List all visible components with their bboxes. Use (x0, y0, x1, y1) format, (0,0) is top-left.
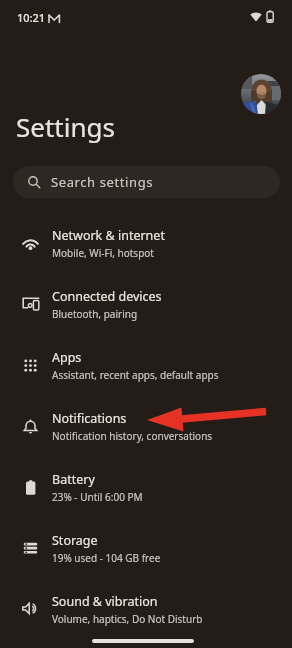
staticText: 23% - Until 6:00 PM (52, 490, 143, 504)
button[interactable]: Sound & vibration (0, 579, 292, 640)
button[interactable]: Storage (0, 518, 292, 579)
staticText: Search settings (51, 173, 154, 191)
staticText: 19% used - 104 GB free (52, 551, 161, 565)
staticText: Notifications (52, 410, 127, 427)
staticText: Connected devices (52, 288, 162, 305)
staticText: Apps (52, 349, 82, 366)
staticText: Assistant, recent apps, default apps (52, 368, 219, 382)
button[interactable]: Connected devices (0, 274, 292, 335)
staticText: Notification history, conversations (52, 429, 213, 443)
staticText: Battery (52, 471, 95, 488)
button[interactable]: Notifications (0, 396, 292, 457)
staticText: Settings (16, 109, 115, 144)
staticText: Volume, haptics, Do Not Disturb (52, 612, 203, 626)
button[interactable]: Network & internet (0, 213, 292, 274)
button[interactable]: Search settings (13, 166, 280, 198)
button[interactable]: Apps (0, 335, 292, 396)
button[interactable] (241, 74, 281, 114)
staticText: Mobile, Wi-Fi, hotspot (52, 246, 154, 260)
staticText: Bluetooth, pairing (52, 307, 138, 321)
staticText: 10:21 (17, 10, 46, 25)
button[interactable]: Battery (0, 457, 292, 518)
staticText: Storage (52, 532, 98, 549)
staticText: Sound & vibration (52, 593, 158, 610)
staticText: Network & internet (52, 227, 165, 244)
